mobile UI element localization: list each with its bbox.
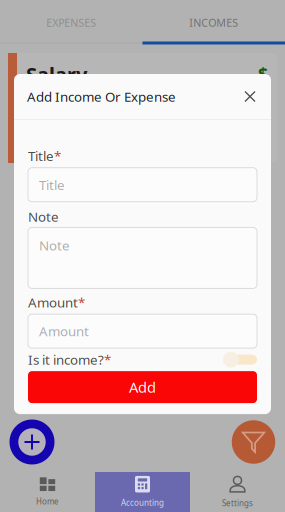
- button[interactable]: Filter: [230, 419, 276, 465]
- staticText: Amount: [39, 322, 89, 340]
- staticText: *: [78, 293, 85, 311]
- staticText: Title: [39, 176, 65, 194]
- staticText: Home: [36, 496, 59, 507]
- button[interactable]: Add: [9, 419, 55, 465]
- staticText: Accounting: [121, 497, 164, 508]
- button[interactable]: Add: [28, 371, 257, 403]
- button[interactable]: Home: [0, 472, 95, 512]
- staticText: Salary: [26, 61, 87, 88]
- staticText: Title: [28, 147, 54, 165]
- staticText: *: [54, 147, 61, 165]
- button[interactable]: Close: [237, 83, 263, 109]
- staticText: *: [104, 351, 111, 368]
- button[interactable]: Settings: [190, 472, 285, 512]
- staticText: Note: [28, 208, 59, 225]
- button[interactable]: Is it income toggle: [223, 351, 257, 368]
- staticText: Add Income Or Expense: [27, 88, 176, 105]
- staticText: Note: [39, 236, 70, 254]
- staticText: Is it income?: [28, 351, 104, 368]
- button[interactable]: Accounting: [95, 472, 190, 512]
- staticText: EXPENSES: [46, 15, 96, 30]
- staticText: Add: [129, 377, 156, 397]
- staticText: $: [258, 63, 268, 86]
- staticText: INCOMES: [189, 15, 238, 30]
- staticText: Settings: [222, 498, 253, 508]
- staticText: Amount: [28, 293, 78, 311]
